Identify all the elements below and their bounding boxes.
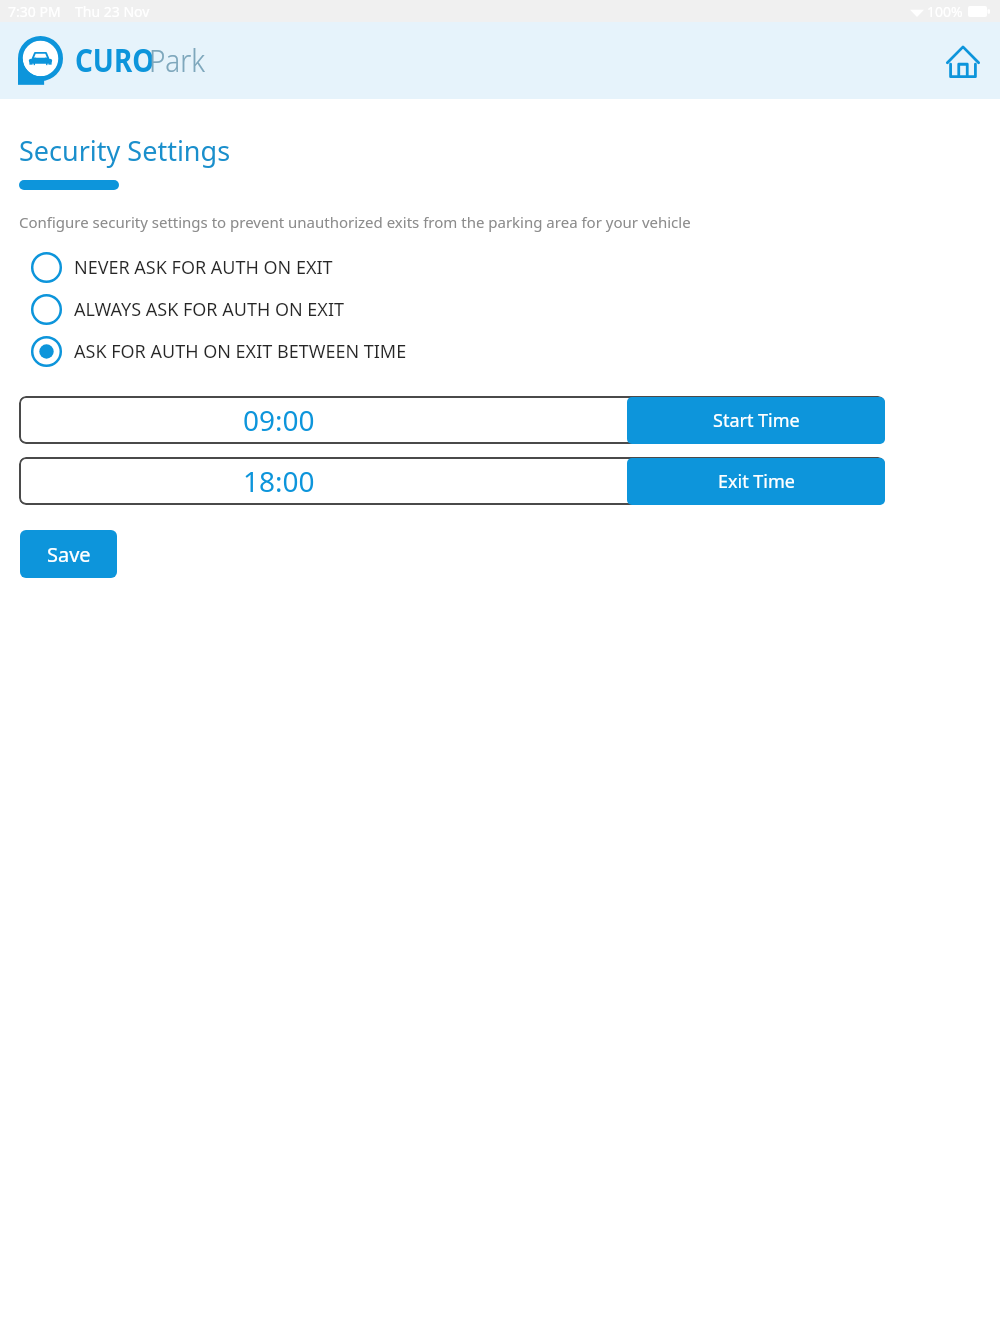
staticText: 18:00 [243, 462, 315, 500]
staticText: 09:00 [243, 401, 315, 439]
staticText: ALWAYS ASK FOR AUTH ON EXIT [74, 297, 345, 322]
button[interactable]: Home [934, 40, 991, 81]
staticText: CURO [75, 38, 155, 82]
staticText: 7:30 PM [8, 2, 61, 21]
staticText: Configure security settings to prevent u… [19, 212, 691, 232]
button[interactable]: Start Time [627, 397, 885, 444]
staticText: NEVER ASK FOR AUTH ON EXIT [74, 255, 333, 280]
button[interactable]: CURO [18, 34, 222, 86]
staticText: Park [149, 38, 205, 82]
staticText: Save [47, 541, 91, 568]
staticText: Thu 23 Nov [75, 2, 150, 21]
button[interactable]: Save [20, 530, 117, 578]
staticText: Start Time [713, 408, 800, 433]
button[interactable] [19, 457, 885, 505]
staticText: Exit Time [718, 469, 795, 494]
button[interactable]: ALWAYS ASK FOR AUTH ON EXIT [0, 290, 1000, 328]
button[interactable]: NEVER ASK FOR AUTH ON EXIT [0, 248, 1000, 286]
button[interactable] [19, 396, 885, 444]
button[interactable]: ASK FOR AUTH ON EXIT BETWEEN TIME [0, 332, 1000, 370]
staticText: Security Settings [19, 132, 231, 169]
button[interactable]: Exit Time [627, 458, 885, 505]
staticText: 100% [927, 2, 963, 21]
staticText: ASK FOR AUTH ON EXIT BETWEEN TIME [74, 339, 407, 364]
